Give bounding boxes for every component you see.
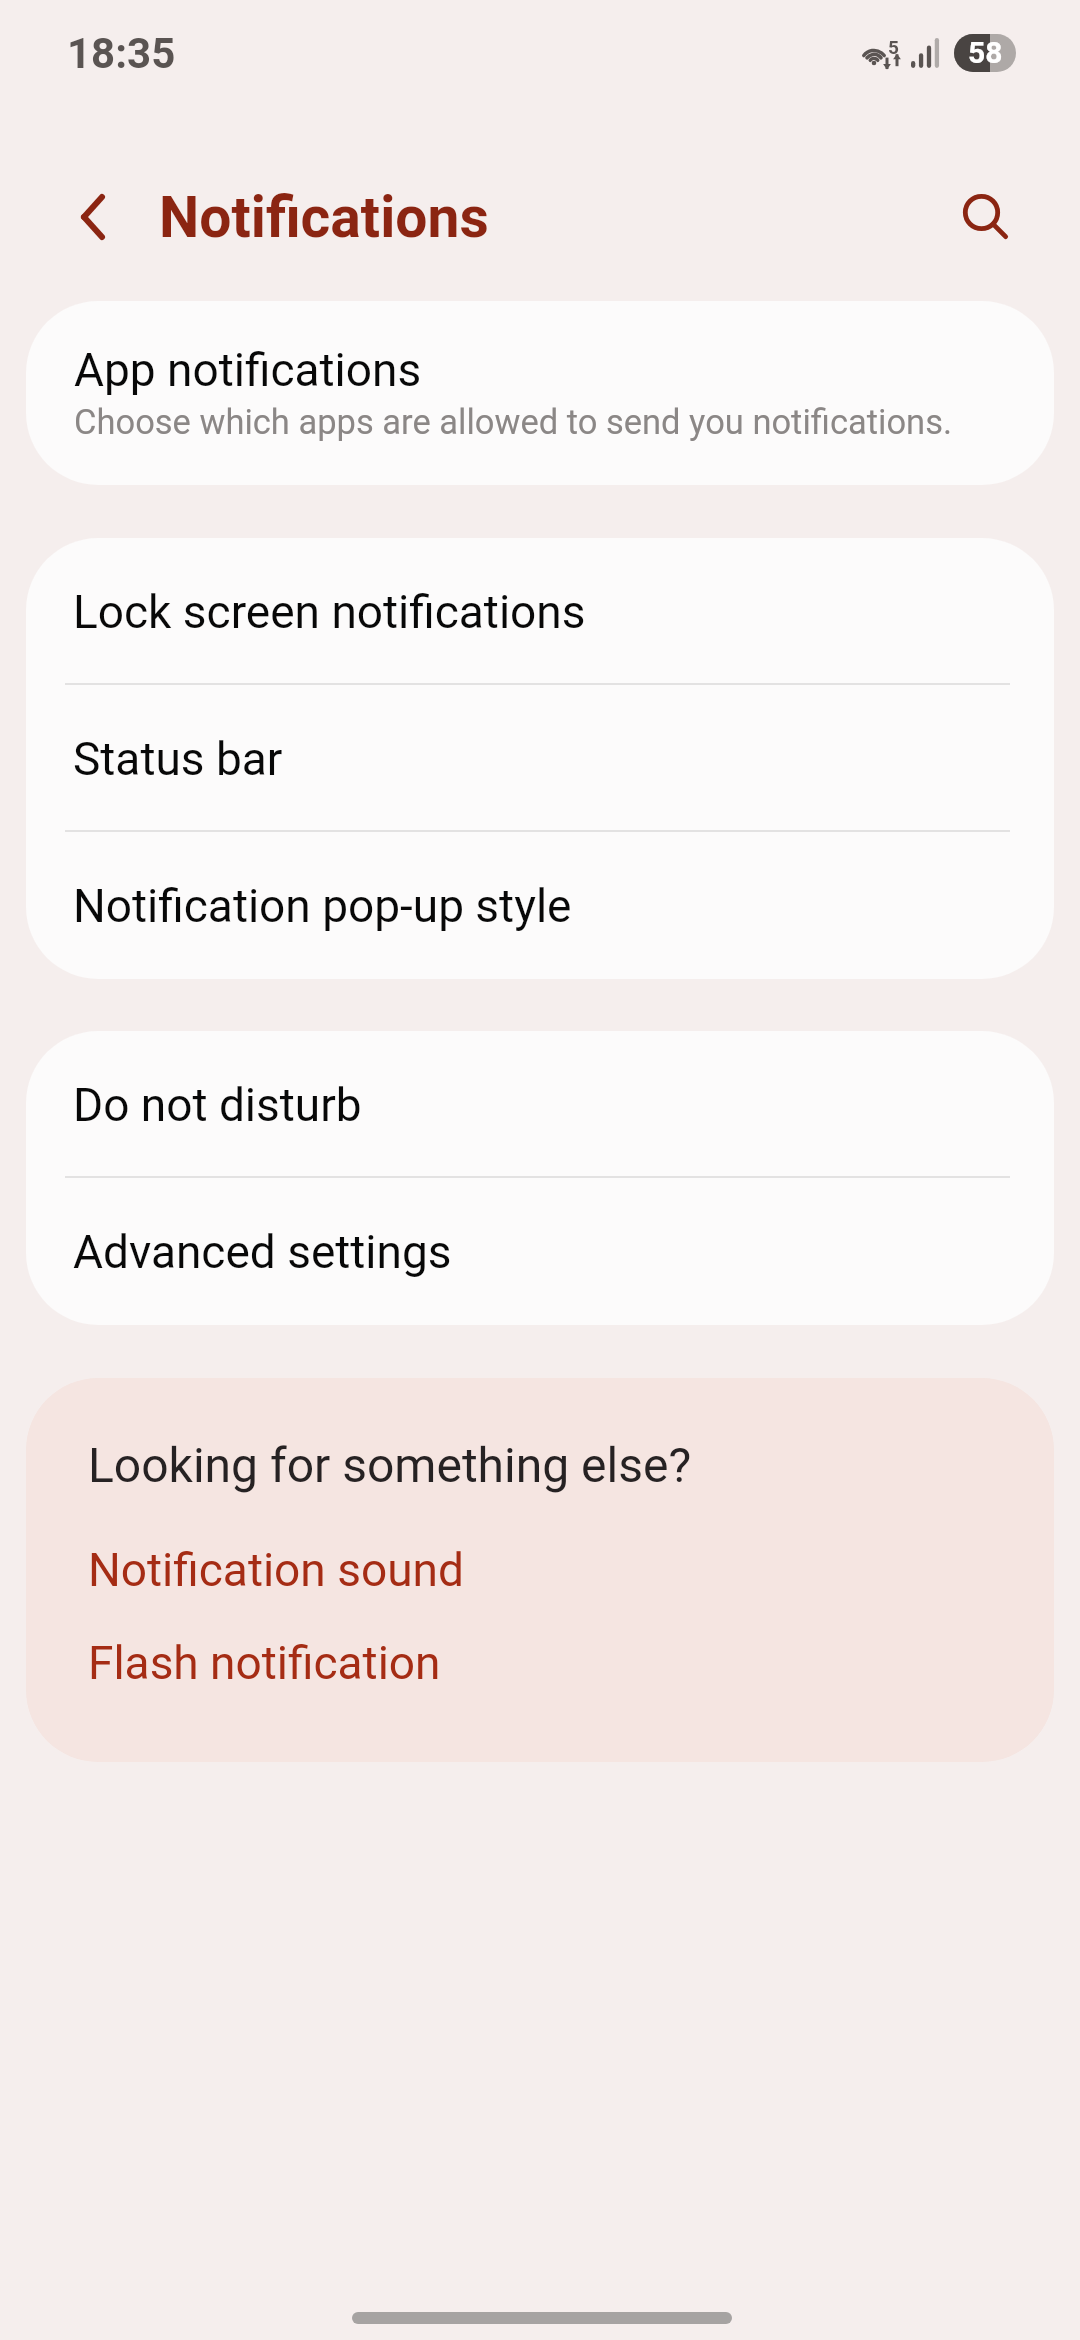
button[interactable]: Notification pop-up style xyxy=(26,832,1054,979)
button[interactable]: Do not disturb xyxy=(26,1031,1054,1178)
button[interactable]: Flash notification xyxy=(26,1620,1054,1706)
staticText: Looking for something else? xyxy=(88,1437,692,1493)
button[interactable]: Advanced settings xyxy=(26,1178,1054,1325)
button[interactable]: Status bar xyxy=(26,685,1054,832)
staticText: Do not disturb xyxy=(73,1078,362,1132)
staticText: Notification sound xyxy=(88,1543,464,1597)
staticText: Status bar xyxy=(73,732,283,786)
staticText: Advanced settings xyxy=(73,1225,452,1279)
staticText: 18:35 xyxy=(67,29,176,78)
staticText: Notifications xyxy=(159,184,489,251)
button[interactable]: Notification sound xyxy=(26,1527,1054,1613)
staticText: 58 xyxy=(968,35,1003,70)
staticText: Flash notification xyxy=(88,1636,441,1690)
button[interactable]: Search xyxy=(947,178,1025,256)
staticText: Choose which apps are allowed to send yo… xyxy=(74,402,953,442)
staticText: 5 xyxy=(888,36,899,58)
staticText: Notification pop-up style xyxy=(73,879,572,933)
button[interactable]: Lock screen notifications xyxy=(26,538,1054,685)
staticText: Lock screen notifications xyxy=(73,585,586,639)
staticText: App notifications xyxy=(74,343,422,397)
button[interactable]: Back xyxy=(60,184,126,250)
button[interactable]: App notifications xyxy=(26,301,1054,485)
